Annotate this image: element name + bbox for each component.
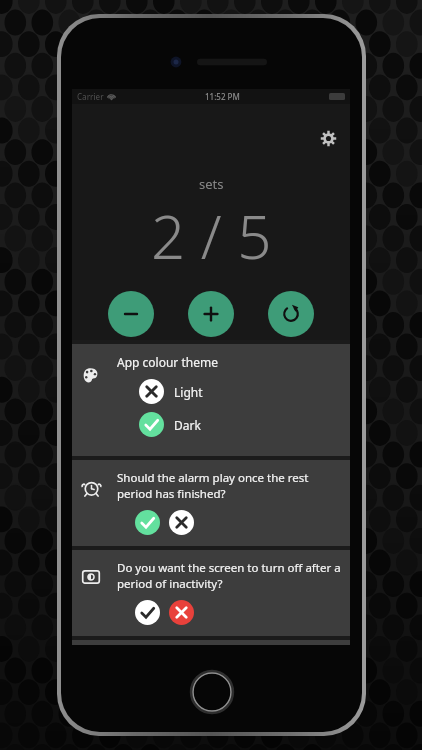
button[interactable]: Settings: [314, 124, 342, 152]
button[interactable]: Yes: [135, 510, 160, 535]
button[interactable]: Decrease set: [108, 291, 154, 337]
staticText: Do you want the screen to turn off after…: [117, 560, 341, 576]
staticText: 2 / 5: [151, 195, 272, 277]
staticText: period has finished?: [117, 486, 226, 502]
staticText: App colour theme: [117, 354, 218, 370]
staticText: Light: [174, 384, 203, 400]
staticText: 11:52 PM: [205, 91, 240, 102]
button[interactable]: No: [169, 510, 194, 535]
button[interactable]: Reset sets: [268, 291, 314, 337]
staticText: Carrier: [77, 91, 104, 102]
staticText: period of inactivity?: [117, 576, 223, 592]
staticText: Dark: [174, 417, 201, 433]
button[interactable]: Light: [139, 379, 203, 404]
staticText: Should the alarm play once the rest: [117, 470, 309, 486]
staticText: sets: [199, 175, 224, 193]
button[interactable]: Increase set: [188, 291, 234, 337]
button[interactable]: Yes: [135, 600, 160, 625]
button[interactable]: Dark: [139, 412, 201, 437]
button[interactable]: No: [169, 600, 194, 625]
